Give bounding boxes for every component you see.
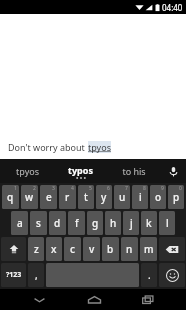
button[interactable]: e	[40, 185, 57, 209]
staticText: x	[51, 242, 57, 256]
button[interactable]: ,	[28, 263, 44, 287]
button[interactable]: c	[64, 237, 81, 261]
staticText: m	[144, 242, 154, 256]
button[interactable]: ?123	[1, 263, 26, 287]
button[interactable]: m	[140, 237, 157, 261]
staticText: a	[17, 216, 23, 230]
button[interactable]: Hide keyboard	[21, 289, 58, 310]
button[interactable]: h	[105, 211, 121, 235]
staticText: r	[65, 190, 70, 204]
button[interactable]: i	[132, 185, 148, 209]
staticText: w	[25, 190, 34, 204]
button[interactable]: u	[114, 185, 130, 209]
staticText: v	[89, 242, 95, 256]
button[interactable]: t	[78, 185, 94, 209]
staticText: g	[92, 216, 99, 230]
button[interactable]: a	[11, 211, 28, 235]
button[interactable]: Backspace	[159, 237, 185, 261]
button[interactable]: v	[83, 237, 100, 261]
staticText: b	[107, 242, 114, 256]
staticText: 9	[161, 185, 164, 192]
button[interactable]: p	[168, 185, 184, 209]
staticText: l	[166, 216, 169, 230]
staticText: 5	[89, 185, 92, 192]
staticText: ,	[35, 268, 38, 282]
staticText: 7	[125, 185, 128, 192]
staticText: p	[173, 190, 180, 204]
staticText: Don't worry about	[8, 141, 88, 153]
staticText: d	[54, 216, 61, 230]
button[interactable]: g	[87, 211, 103, 235]
staticText: to his	[122, 165, 146, 177]
staticText: 4	[71, 185, 74, 192]
staticText: c	[70, 242, 75, 256]
staticText: .	[148, 268, 151, 282]
staticText: n	[126, 242, 133, 256]
staticText: t	[84, 190, 88, 204]
staticText: h	[110, 216, 117, 230]
staticText: 1	[14, 185, 17, 192]
button[interactable]: l	[159, 211, 175, 235]
staticText: i	[139, 190, 142, 204]
staticText: k	[146, 216, 152, 230]
staticText: 6	[107, 185, 110, 192]
button[interactable]: s	[30, 211, 47, 235]
button[interactable]: r	[59, 185, 76, 209]
button[interactable]: d	[49, 211, 66, 235]
button[interactable]: j	[123, 211, 139, 235]
button[interactable]: Shift	[1, 237, 26, 261]
button[interactable]: to his	[107, 159, 160, 183]
staticText: ?123	[6, 270, 22, 280]
button[interactable]: .	[141, 263, 157, 287]
button[interactable]: k	[141, 211, 157, 235]
staticText: typos	[68, 164, 93, 176]
staticText: 3	[52, 185, 55, 192]
button[interactable]: tpyos	[0, 159, 54, 183]
button[interactable]: x	[46, 237, 62, 261]
button[interactable]: o	[150, 185, 166, 209]
button[interactable]: typos	[54, 159, 107, 183]
staticText: j	[130, 216, 133, 230]
staticText: s	[36, 216, 41, 230]
staticText: f	[75, 216, 79, 230]
button[interactable]: b	[102, 237, 119, 261]
staticText: o	[155, 190, 162, 204]
button[interactable]: z	[28, 237, 44, 261]
staticText: 8	[143, 185, 146, 192]
staticText: e	[46, 190, 52, 204]
button[interactable]: f	[68, 211, 85, 235]
button[interactable]: w	[21, 185, 38, 209]
staticText: tpyos	[88, 141, 111, 153]
staticText: 04:40	[162, 2, 183, 13]
button[interactable]: q	[2, 185, 19, 209]
staticText: 0	[179, 185, 182, 192]
button[interactable]: Recent apps	[130, 289, 166, 310]
button[interactable]: Home	[76, 289, 112, 310]
button[interactable]: Emoji	[159, 263, 185, 287]
staticText: y	[101, 190, 107, 204]
staticText: 2	[33, 185, 36, 192]
button[interactable]: n	[121, 237, 138, 261]
button[interactable]: Voice input	[160, 159, 186, 183]
staticText: tpyos	[16, 165, 39, 177]
staticText: z	[34, 242, 39, 256]
button[interactable]: y	[96, 185, 112, 209]
staticText: q	[7, 190, 14, 204]
staticText: u	[119, 190, 126, 204]
